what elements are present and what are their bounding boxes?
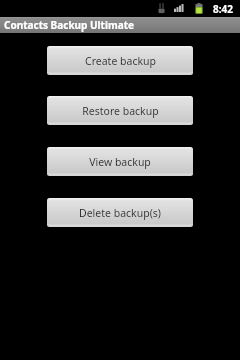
other: Battery bbox=[195, 3, 203, 14]
staticText: Create backup bbox=[85, 54, 156, 68]
other: Signal strength bbox=[174, 4, 184, 12]
button[interactable]: Delete backup(s) bbox=[47, 198, 193, 227]
other: USB connected bbox=[158, 3, 165, 14]
staticText: Delete backup(s) bbox=[79, 206, 161, 220]
staticText: Restore backup bbox=[82, 104, 159, 118]
staticText: View backup bbox=[89, 155, 151, 169]
button[interactable]: Create backup bbox=[47, 46, 193, 75]
staticText: 8:42 bbox=[213, 2, 233, 16]
staticText: Contacts Backup Ultimate bbox=[4, 18, 134, 32]
button[interactable]: Restore backup bbox=[47, 96, 193, 125]
button[interactable]: View backup bbox=[47, 147, 193, 176]
